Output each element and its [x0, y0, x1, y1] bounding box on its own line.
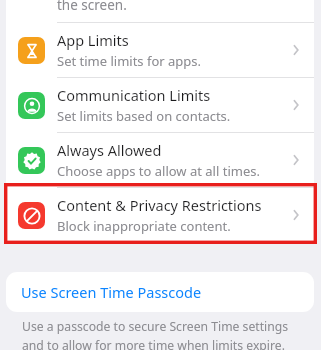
staticText: App Limits [57, 30, 129, 50]
button[interactable]: Always Allowed [6, 133, 314, 187]
staticText: and to allow for more time when limits e… [22, 337, 285, 350]
button[interactable]: Use Screen Time Passcode [6, 272, 314, 312]
button[interactable]: Communication Limits [6, 78, 314, 132]
staticText: Choose apps to allow at all times. [57, 162, 260, 180]
staticText: Set time limits for apps. [57, 52, 202, 70]
staticText: Always Allowed [57, 140, 162, 160]
staticText: the screen. [57, 0, 127, 14]
staticText: Use a passcode to secure Screen Time set… [22, 318, 289, 335]
staticText: Set limits based on contacts. [57, 107, 231, 125]
staticText: Block inappropriate content. [57, 217, 231, 235]
staticText: Content & Privacy Restrictions [57, 195, 262, 215]
button[interactable]: Content & Privacy Restrictions [6, 188, 314, 242]
button[interactable]: App Limits [6, 23, 314, 77]
staticText: Communication Limits [57, 85, 211, 105]
staticText: Use Screen Time Passcode [21, 282, 202, 302]
